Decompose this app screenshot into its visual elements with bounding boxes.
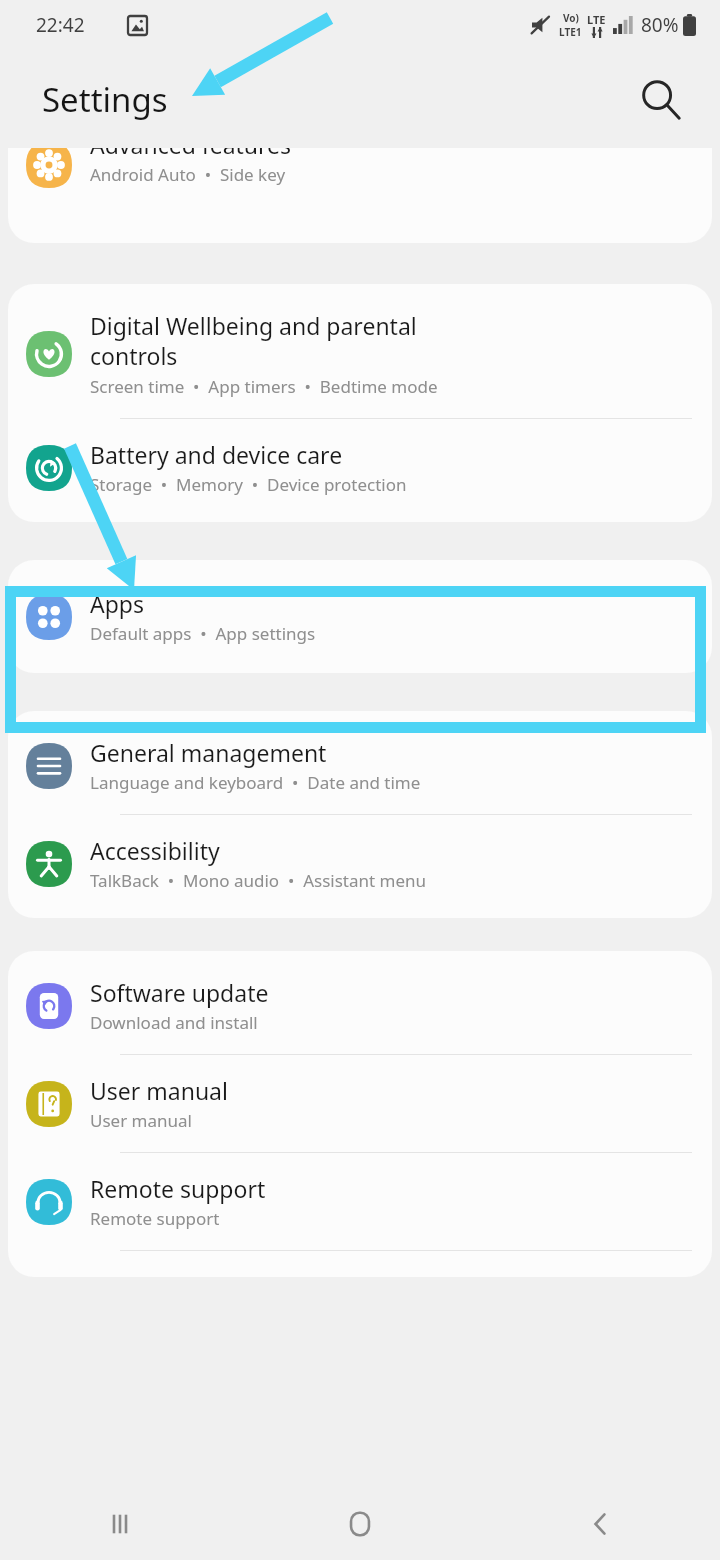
staticText: Digital Wellbeing and parental controls	[90, 310, 417, 372]
staticText: Settings	[42, 77, 168, 122]
staticText: Vo)	[563, 11, 579, 25]
staticText: 22:42	[36, 12, 85, 38]
staticText: Battery and device care	[90, 439, 343, 470]
button[interactable]: Search	[636, 75, 684, 123]
button[interactable]: Back	[480, 1488, 720, 1560]
staticText: TalkBack • Mono audio • Assistant menu	[90, 869, 427, 892]
button[interactable]: User manual	[8, 1055, 712, 1152]
staticText: User manual	[90, 1075, 228, 1106]
staticText: Apps	[90, 588, 145, 619]
staticText: LTE1	[559, 25, 582, 39]
staticText: Remote support	[90, 1173, 266, 1204]
staticText: General management	[90, 737, 327, 768]
staticText: Android Auto • Side key	[90, 163, 286, 186]
button[interactable]: General management	[8, 711, 712, 814]
staticText: User manual	[90, 1109, 192, 1132]
staticText: 80%	[641, 12, 679, 38]
button[interactable]: Advanced features	[8, 148, 712, 188]
staticText: Software update	[90, 977, 269, 1008]
staticText: Storage • Memory • Device protection	[90, 473, 407, 496]
button[interactable]: Digital Wellbeing and parental controls	[8, 284, 712, 418]
staticText: Language and keyboard • Date and time	[90, 771, 421, 794]
button[interactable]: Apps	[8, 560, 712, 673]
button[interactable]: Recents	[0, 1488, 240, 1560]
staticText: Default apps • App settings	[90, 622, 316, 645]
button[interactable]: Remote support	[8, 1153, 712, 1250]
staticText: Advanced features	[90, 148, 292, 160]
button[interactable]: Accessibility	[8, 815, 712, 918]
button[interactable]: Home	[240, 1488, 480, 1560]
staticText: Remote support	[90, 1207, 220, 1230]
button[interactable]: Software update	[8, 951, 712, 1054]
staticText: Accessibility	[90, 835, 220, 866]
staticText: Download and install	[90, 1011, 258, 1034]
staticText: LTE	[587, 12, 606, 27]
button[interactable]: Battery and device care	[8, 419, 712, 522]
staticText: Screen time • App timers • Bedtime mode	[90, 375, 438, 398]
